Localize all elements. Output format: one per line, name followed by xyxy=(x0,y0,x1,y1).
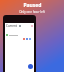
button[interactable]: Create xyxy=(28,64,33,69)
staticText: Paused xyxy=(23,2,42,9)
staticText: Only one hour left xyxy=(19,10,45,14)
staticText: Current xyxy=(6,24,18,28)
